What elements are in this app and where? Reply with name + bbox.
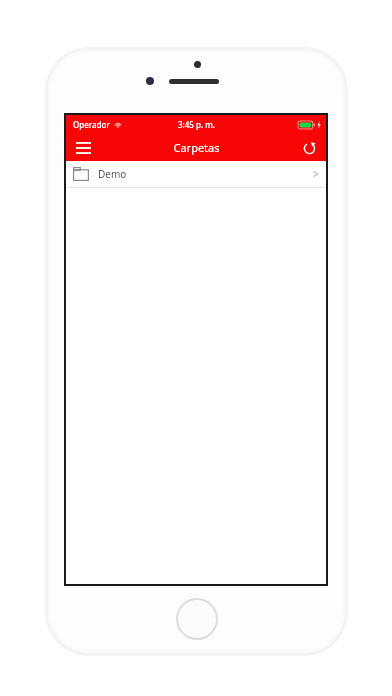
staticText: Demo: [98, 167, 313, 181]
button[interactable]: Demo: [66, 161, 326, 187]
button[interactable]: Refresh: [297, 136, 321, 160]
staticText: Carpetas: [173, 140, 220, 155]
staticText: Operador: [73, 119, 110, 130]
staticText: 3:45 p. m.: [178, 119, 215, 130]
button[interactable]: Menu: [71, 136, 95, 160]
